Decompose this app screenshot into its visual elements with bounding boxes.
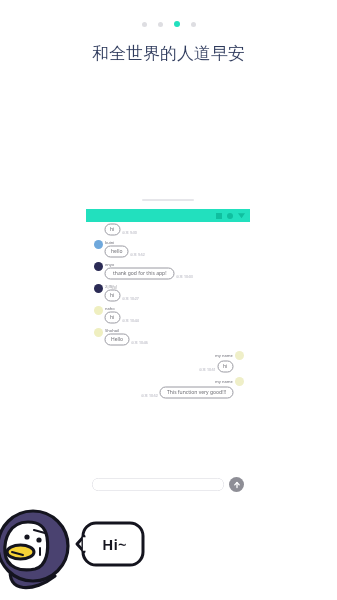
staticText: hi — [110, 314, 115, 321]
button[interactable]: enyx — [92, 262, 244, 279]
button[interactable]: Shohail — [92, 328, 244, 345]
button[interactable]: Home — [227, 213, 233, 219]
staticText: hi — [110, 226, 115, 233]
button[interactable] — [191, 22, 196, 27]
staticText: enyx — [105, 262, 115, 267]
staticText: 오후 10:27 — [122, 296, 139, 301]
staticText: hello — [111, 248, 123, 255]
staticText: 오후 10:46 — [131, 340, 148, 345]
button[interactable]: Send — [229, 477, 244, 492]
button[interactable]: Mascot saying Hi — [0, 500, 150, 600]
staticText: hi — [223, 363, 228, 370]
button[interactable]: 지혜님 — [92, 284, 244, 301]
button[interactable]: my name — [92, 377, 244, 398]
staticText: kuini — [105, 240, 115, 245]
button[interactable] — [174, 21, 180, 27]
staticText: 오후 9:30 — [122, 230, 137, 235]
staticText: Hello — [111, 336, 124, 343]
button[interactable]: Back — [238, 212, 245, 219]
button[interactable]: my name — [92, 351, 244, 372]
staticText: my name — [215, 379, 233, 384]
staticText: 지혜님 — [105, 284, 117, 289]
staticText: 오후 10:03 — [176, 274, 193, 279]
staticText: 오후 10:52 — [141, 393, 158, 398]
button[interactable] — [142, 22, 147, 27]
button[interactable]: Stop — [86, 209, 250, 222]
staticText: 和全世界的人道早安 — [92, 43, 245, 64]
button[interactable]: kuini — [92, 240, 244, 257]
staticText: 오후 10:44 — [122, 318, 139, 323]
staticText: my name — [215, 353, 233, 358]
staticText: Hi~ — [102, 534, 127, 554]
button[interactable] — [158, 22, 163, 27]
staticText: Shohail — [105, 328, 120, 333]
staticText: naho — [105, 306, 115, 311]
button[interactable] — [92, 478, 224, 491]
staticText: hi — [110, 292, 115, 299]
staticText: thank god for this app! — [113, 270, 167, 277]
button[interactable]: hi — [92, 224, 244, 235]
staticText: 오후 9:52 — [130, 252, 145, 257]
button[interactable]: naho — [92, 306, 244, 323]
staticText: 오후 10:51 — [199, 367, 216, 372]
staticText: This function very good!!! — [167, 389, 227, 396]
button[interactable]: Hi~ — [76, 520, 146, 568]
